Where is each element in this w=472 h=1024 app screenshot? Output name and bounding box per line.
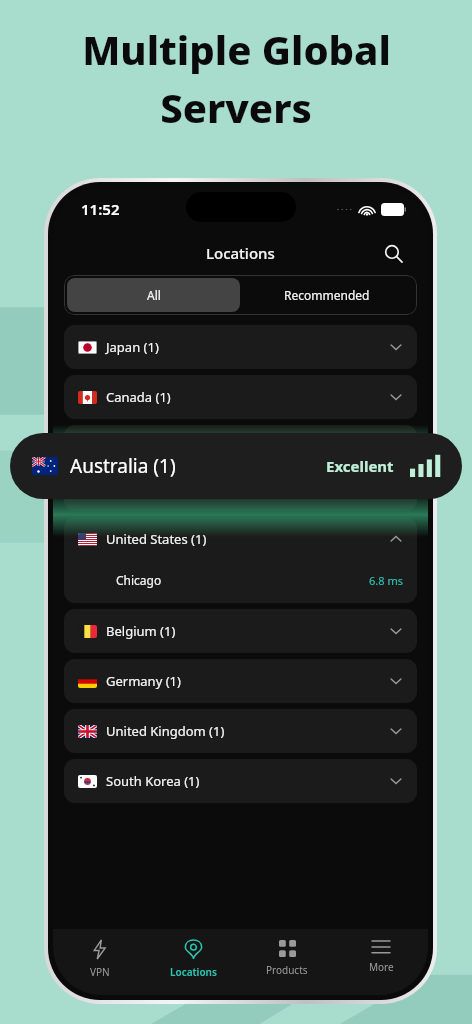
staticText: Japan (1): [106, 338, 159, 356]
button[interactable]: South Korea (1): [64, 759, 417, 803]
staticText: United States (1): [106, 530, 207, 548]
staticText: All: [147, 287, 161, 303]
button[interactable]: Japan (1): [64, 325, 417, 369]
staticText: More: [369, 960, 394, 974]
staticText: Chicago: [116, 572, 162, 588]
button[interactable]: Recommended: [240, 278, 414, 312]
staticText: 11:52: [81, 199, 120, 219]
staticText: Locations: [206, 243, 275, 263]
button[interactable]: Australia (1): [10, 433, 462, 499]
button[interactable]: All: [67, 278, 240, 312]
button[interactable]: Search: [378, 238, 408, 268]
staticText: Canada (1): [106, 388, 171, 406]
button[interactable]: Products: [240, 929, 334, 995]
button[interactable]: Chicago: [78, 561, 403, 599]
button[interactable]: VPN: [53, 929, 146, 995]
button[interactable]: Canada (1): [64, 375, 417, 419]
button[interactable]: More: [334, 929, 428, 995]
staticText: VPN: [90, 965, 110, 979]
staticText: Australia (1): [70, 453, 176, 479]
staticText: Belgium (1): [106, 622, 176, 640]
staticText: Servers: [160, 80, 312, 134]
button[interactable]: Belgium (1): [64, 609, 417, 653]
button[interactable]: United Kingdom (1): [64, 709, 417, 753]
button[interactable]: Germany (1): [64, 659, 417, 703]
staticText: Multiple Global: [82, 22, 391, 76]
button[interactable]: United States (1): [64, 517, 417, 603]
staticText: Recommended: [284, 287, 370, 303]
staticText: Locations: [170, 965, 217, 979]
staticText: Germany (1): [106, 672, 181, 690]
staticText: United Kingdom (1): [106, 722, 225, 740]
staticText: Products: [266, 963, 308, 977]
staticText: 6.8 ms: [369, 573, 403, 588]
staticText: South Korea (1): [106, 772, 200, 790]
button[interactable]: Locations: [146, 929, 240, 995]
button[interactable]: Australia (1): [64, 425, 417, 511]
staticText: Excellent: [326, 456, 394, 476]
button[interactable]: Sydney: [78, 469, 403, 507]
